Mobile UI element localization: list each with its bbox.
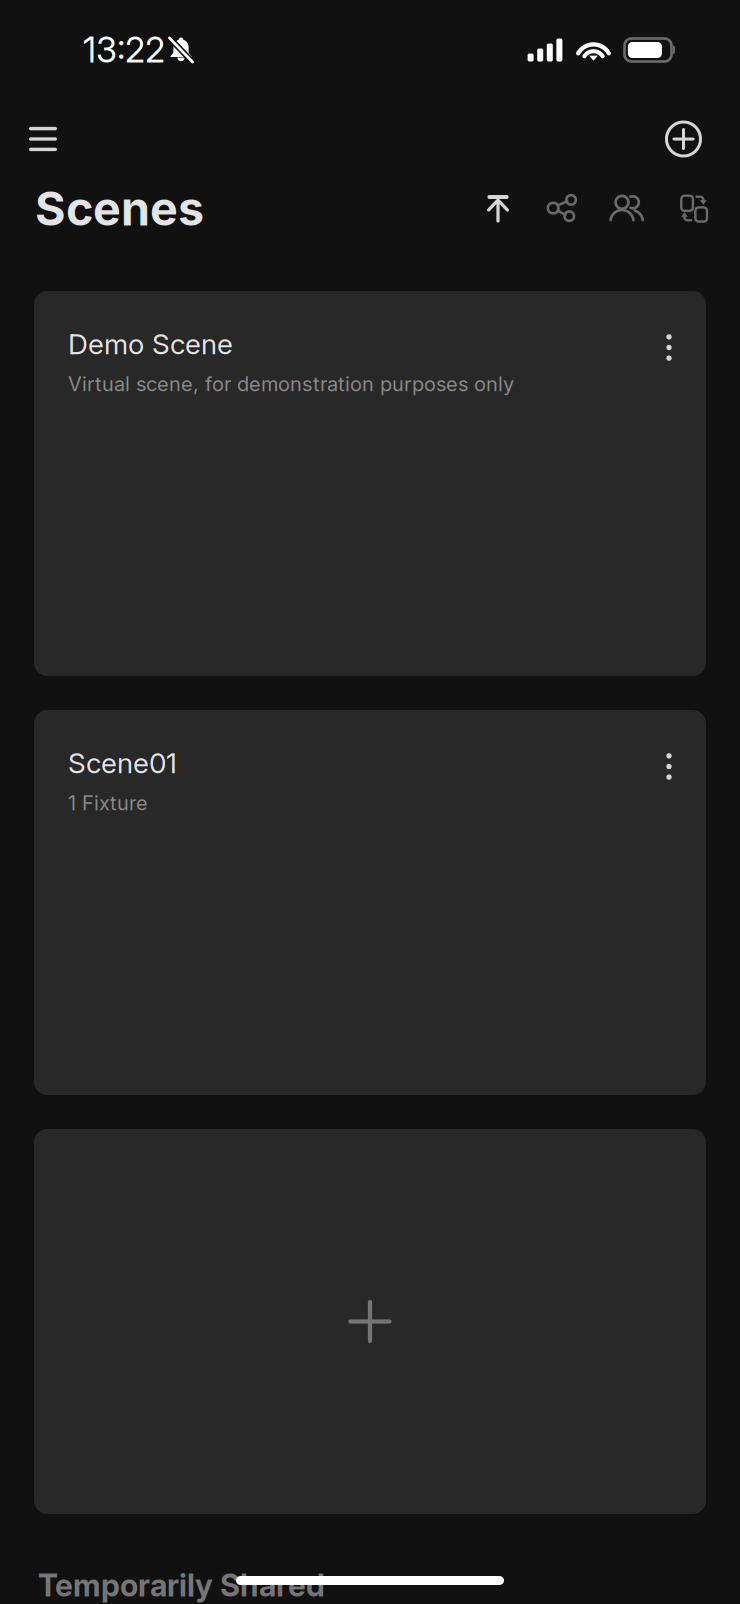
staticText: 1 Fixture <box>68 791 148 815</box>
staticText: Demo Scene <box>68 327 233 361</box>
button[interactable]: Upload <box>465 182 530 234</box>
button[interactable]: Scene01 <box>34 710 706 1095</box>
button[interactable]: More options <box>650 740 688 793</box>
staticText: Virtual scene, for demonstration purpose… <box>68 372 514 396</box>
staticText: Scenes <box>35 180 204 237</box>
button[interactable]: Add scene <box>656 111 711 166</box>
button[interactable]: Share <box>530 182 595 234</box>
button[interactable]: Members <box>595 182 660 234</box>
button[interactable]: More options <box>650 321 688 374</box>
button[interactable]: Demo Scene <box>34 291 706 676</box>
button[interactable]: Menu <box>15 112 71 166</box>
staticText: Temporarily Shared <box>38 1567 325 1604</box>
staticText: Scene01 <box>68 746 177 780</box>
staticText: 13:22 <box>83 29 165 71</box>
button[interactable]: Sync devices <box>660 182 725 234</box>
